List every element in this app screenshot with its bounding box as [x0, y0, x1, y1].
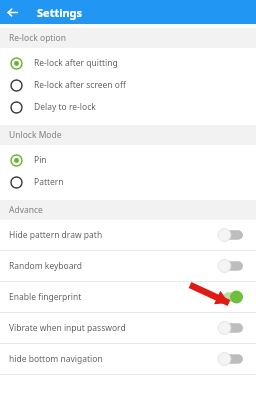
other: Enable fingerprint	[218, 290, 243, 304]
staticText: Settings	[37, 5, 83, 20]
staticText: Re-lock after quitting	[34, 57, 118, 69]
staticText: Pin	[34, 154, 47, 166]
button[interactable]: hide bottom navigation	[0, 344, 256, 374]
staticText: Enable fingerprint	[9, 291, 82, 303]
button[interactable]: Vibrate when input password	[0, 313, 256, 343]
button[interactable]: Re-lock after screen off	[0, 74, 256, 96]
staticText: Re-lock option	[9, 32, 67, 44]
staticText: Delay to re-lock	[34, 101, 96, 113]
button[interactable]: Re-lock after quitting	[0, 52, 256, 74]
button[interactable]: Random keyboard	[0, 251, 256, 281]
other: hide bottom navigation	[218, 352, 243, 366]
button[interactable]: Pin	[0, 149, 256, 171]
other: Vibrate when input password	[218, 321, 243, 335]
staticText: Unlock Mode	[9, 129, 62, 141]
staticText: Advance	[9, 204, 43, 216]
button[interactable]: Back	[0, 0, 24, 24]
staticText: Pattern	[34, 176, 64, 188]
staticText: Vibrate when input password	[9, 322, 126, 334]
button[interactable]: Enable fingerprint	[0, 282, 256, 312]
staticText: Hide pattern draw path	[9, 229, 103, 241]
staticText: Random keyboard	[9, 260, 83, 272]
button[interactable]: Hide pattern draw path	[0, 220, 256, 250]
staticText: Re-lock after screen off	[34, 79, 126, 91]
other: Random keyboard	[218, 259, 243, 273]
button[interactable]: Pattern	[0, 171, 256, 193]
other: Hide pattern draw path	[218, 228, 243, 242]
staticText: hide bottom navigation	[9, 353, 103, 365]
button[interactable]: Delay to re-lock	[0, 96, 256, 118]
